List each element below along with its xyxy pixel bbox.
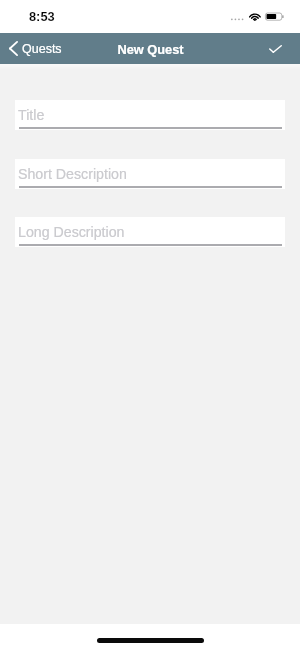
staticText: Quests	[22, 42, 62, 56]
button[interactable]: Quests	[3, 36, 70, 61]
button[interactable]: Save quest	[261, 36, 289, 61]
button[interactable]: Title	[15, 100, 285, 130]
staticText: Title	[18, 107, 45, 123]
staticText: Long Description	[18, 224, 125, 240]
button[interactable]: Short Description	[15, 159, 285, 189]
staticText: New Quest	[117, 42, 184, 56]
staticText: 8:53	[29, 9, 55, 23]
button[interactable]: Long Description	[15, 217, 285, 247]
staticText: Short Description	[18, 166, 127, 182]
